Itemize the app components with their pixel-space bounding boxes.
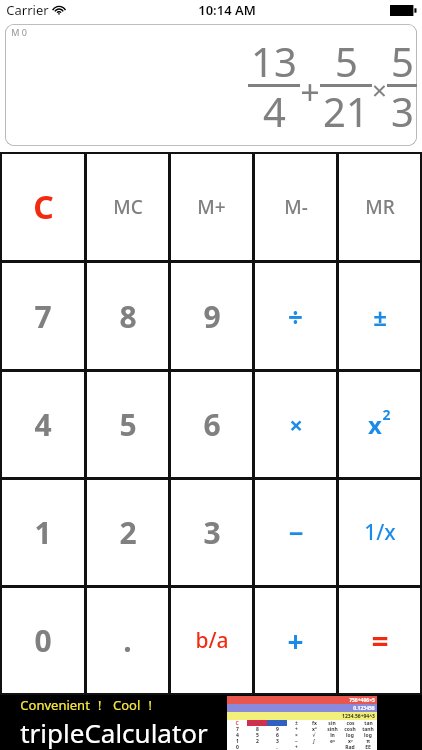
staticText: 1234.56+94^3 bbox=[342, 713, 375, 720]
staticText: × bbox=[372, 72, 387, 107]
staticText: x² bbox=[312, 726, 317, 732]
staticText: . bbox=[123, 620, 132, 661]
staticText: 10:14 AM bbox=[198, 1, 256, 19]
staticText: 0 bbox=[236, 744, 239, 750]
staticText: 8 bbox=[256, 726, 259, 732]
staticText: 1 bbox=[236, 738, 239, 744]
staticText: sin bbox=[328, 720, 336, 726]
staticText: 5 bbox=[335, 34, 358, 88]
button[interactable]: C bbox=[2, 154, 84, 260]
staticText: 0 bbox=[34, 620, 52, 661]
staticText: + bbox=[295, 726, 298, 732]
button[interactable]: 7 bbox=[2, 263, 84, 369]
staticText: log bbox=[364, 732, 372, 738]
staticText: 5 bbox=[391, 34, 414, 88]
staticText: 2 bbox=[256, 738, 259, 744]
button[interactable]: x bbox=[339, 372, 420, 477]
staticText: + bbox=[300, 69, 320, 115]
staticText: Carrier bbox=[6, 1, 49, 19]
staticText: EE bbox=[365, 744, 371, 750]
staticText: ln bbox=[330, 732, 335, 738]
staticText: 9 bbox=[276, 726, 279, 732]
staticText: eˣ bbox=[330, 738, 335, 744]
staticText: ÷ bbox=[288, 299, 303, 334]
staticText: cos bbox=[346, 720, 355, 726]
button[interactable]: 0 bbox=[2, 588, 84, 693]
button[interactable]: . bbox=[87, 588, 168, 693]
button[interactable]: − bbox=[255, 480, 336, 585]
staticText: M- bbox=[284, 194, 308, 220]
staticText: × bbox=[295, 732, 298, 738]
staticText: fx bbox=[312, 720, 317, 726]
button[interactable]: 1 bbox=[2, 480, 84, 585]
staticText: 5 bbox=[119, 404, 137, 445]
button[interactable]: MR bbox=[339, 154, 420, 260]
staticText: M 0 bbox=[11, 26, 27, 38]
staticText: log bbox=[346, 732, 354, 738]
button[interactable]: M- bbox=[255, 154, 336, 260]
staticText: cosh bbox=[344, 726, 356, 732]
staticText: 7 bbox=[34, 296, 52, 337]
staticText: MR bbox=[365, 194, 395, 220]
staticText: + bbox=[287, 622, 304, 660]
staticText: 4 bbox=[34, 404, 52, 445]
staticText: 1/x bbox=[364, 518, 396, 547]
staticText: sinh bbox=[327, 726, 338, 732]
staticText: 3 bbox=[276, 738, 279, 744]
staticText: − bbox=[295, 738, 298, 744]
staticText: Convenient ！ Cool ！ bbox=[20, 696, 157, 714]
button[interactable]: + bbox=[255, 588, 336, 693]
staticText: 13 bbox=[251, 34, 297, 88]
button[interactable]: 1/x bbox=[339, 480, 420, 585]
staticText: M+ bbox=[197, 194, 226, 220]
staticText: 0.123456 bbox=[353, 705, 375, 712]
staticText: 2 bbox=[119, 512, 137, 553]
staticText: 3 bbox=[391, 84, 414, 138]
staticText: tan bbox=[364, 720, 373, 726]
button[interactable]: M+ bbox=[171, 154, 252, 260]
button[interactable]: b/a bbox=[171, 588, 252, 693]
staticText: MC bbox=[113, 194, 143, 220]
staticText: tanh bbox=[362, 726, 374, 732]
staticText: xʸ bbox=[348, 738, 353, 744]
button[interactable]: 5 bbox=[87, 372, 168, 477]
button[interactable]: 9 bbox=[171, 263, 252, 369]
staticText: 8 bbox=[119, 296, 137, 337]
staticText: 4 bbox=[236, 732, 239, 738]
staticText: √ bbox=[312, 732, 316, 738]
button[interactable]: ± bbox=[339, 263, 420, 369]
staticText: Rad bbox=[345, 744, 355, 750]
staticText: b/a bbox=[195, 626, 229, 655]
button[interactable]: 8 bbox=[87, 263, 168, 369]
button[interactable]: = bbox=[339, 588, 420, 693]
staticText: 5 bbox=[256, 732, 259, 738]
staticText: ∫ bbox=[312, 738, 316, 744]
staticText: 1 bbox=[34, 512, 52, 553]
staticText: ± bbox=[295, 720, 298, 726]
staticText: π bbox=[366, 738, 370, 744]
staticText: × bbox=[289, 408, 303, 441]
staticText: = bbox=[371, 620, 389, 661]
staticText: 3 bbox=[203, 512, 221, 553]
staticText: tripleCalculator bbox=[20, 715, 208, 750]
button[interactable]: tripleCalculator advertisement bbox=[0, 695, 422, 750]
button[interactable]: 6 bbox=[171, 372, 252, 477]
staticText: 21 bbox=[323, 84, 369, 138]
staticText: 9 bbox=[203, 296, 221, 337]
button[interactable]: MC bbox=[87, 154, 168, 260]
staticText: 6 bbox=[276, 732, 279, 738]
staticText: ± bbox=[373, 300, 387, 333]
staticText: . bbox=[276, 744, 278, 750]
button[interactable]: 3 bbox=[171, 480, 252, 585]
button[interactable]: 2 bbox=[87, 480, 168, 585]
button[interactable]: 4 bbox=[2, 372, 84, 477]
staticText: 2 bbox=[382, 405, 391, 424]
button[interactable]: × bbox=[255, 372, 336, 477]
staticText: C bbox=[235, 720, 239, 726]
staticText: + bbox=[295, 744, 298, 750]
staticText: x bbox=[368, 408, 382, 441]
staticText: 756+496×5 bbox=[349, 697, 375, 704]
staticText: 4 bbox=[263, 84, 286, 138]
button[interactable]: ÷ bbox=[255, 263, 336, 369]
staticText: C bbox=[33, 185, 54, 229]
